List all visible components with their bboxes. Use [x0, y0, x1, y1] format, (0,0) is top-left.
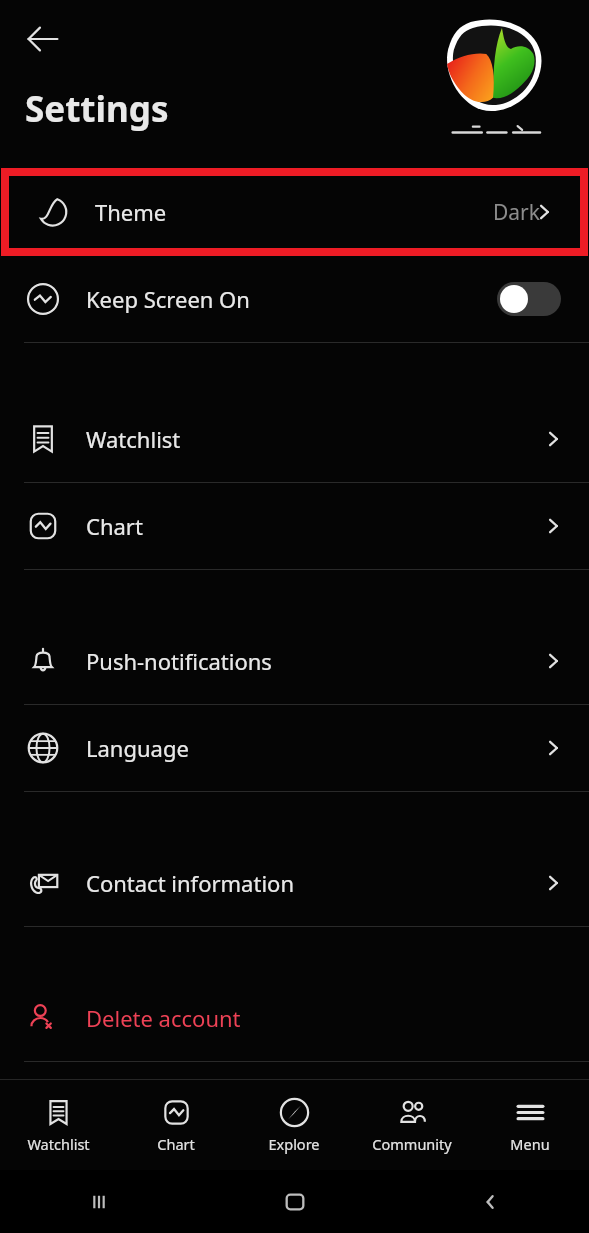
staticText: Keep Screen On — [86, 284, 250, 314]
button[interactable]: Community — [353, 1080, 471, 1170]
staticText: Watchlist — [27, 1134, 90, 1154]
button[interactable]: Contact information — [0, 840, 589, 926]
button[interactable]: Back — [393, 1170, 589, 1233]
button[interactable]: Watchlist — [0, 396, 589, 482]
button[interactable]: Recents — [0, 1170, 197, 1233]
staticText: Settings — [25, 85, 169, 133]
button[interactable]: Keep Screen On — [0, 256, 589, 342]
button[interactable]: Menu — [471, 1080, 589, 1170]
button[interactable]: Language — [0, 705, 589, 791]
staticText: Delete account — [86, 1003, 241, 1033]
button[interactable]: Back — [24, 20, 62, 58]
staticText: Dark — [493, 198, 540, 227]
button[interactable]: Explore — [235, 1080, 353, 1170]
staticText: Watchlist — [86, 424, 181, 454]
staticText: Explore — [268, 1134, 320, 1154]
staticText: Chart — [86, 511, 143, 541]
staticText: Contact information — [86, 868, 294, 898]
button[interactable]: Push-notifications — [0, 618, 589, 704]
button[interactable]: Watchlist — [0, 1080, 117, 1170]
button[interactable]: Chart — [117, 1080, 235, 1170]
staticText: Community — [372, 1134, 452, 1154]
staticText: Theme — [95, 197, 167, 227]
button[interactable]: Keep Screen On toggle — [497, 282, 561, 316]
staticText: Language — [86, 733, 189, 763]
staticText: Chart — [157, 1134, 195, 1154]
button[interactable]: Chart — [0, 483, 589, 569]
staticText: Menu — [510, 1134, 550, 1154]
button[interactable]: Home — [197, 1170, 393, 1233]
button[interactable]: Delete account — [0, 975, 589, 1061]
button[interactable]: Theme — [9, 176, 580, 248]
staticText: Push-notifications — [86, 646, 272, 676]
